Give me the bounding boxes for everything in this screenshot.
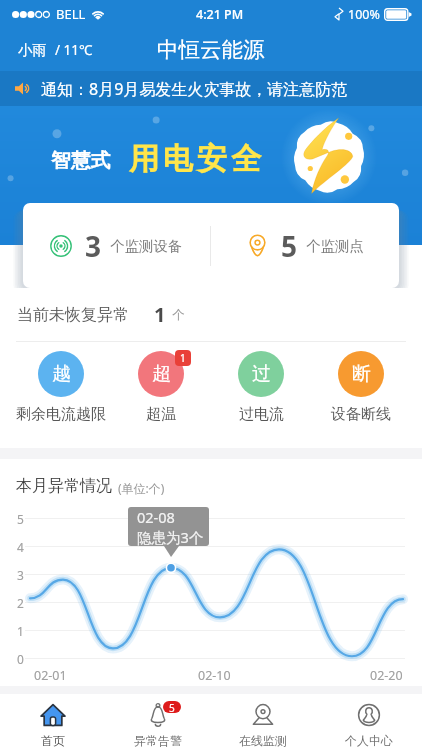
button[interactable]: 在线监测 — [210, 694, 316, 750]
staticText: 1 — [180, 351, 186, 365]
staticText: 过电流 — [239, 405, 284, 424]
other: Announcement — [15, 82, 31, 95]
staticText: 智慧式 — [51, 148, 111, 173]
button[interactable]: 超 — [111, 342, 211, 448]
staticText: 通知：8月9月易发生火灾事故，请注意防范 — [41, 78, 348, 100]
staticText: 3 — [17, 567, 24, 583]
staticText: 4 — [17, 539, 24, 555]
button[interactable]: 5 — [105, 694, 210, 750]
button[interactable]: 3 — [23, 203, 210, 288]
staticText: 越 — [52, 362, 71, 386]
staticText: 02-10 — [198, 667, 231, 684]
staticText: 首页 — [41, 733, 65, 748]
staticText: 当前未恢复异常 — [17, 305, 129, 325]
staticText: BELL — [56, 5, 86, 23]
staticText: 5 — [17, 511, 24, 527]
staticText: 断 — [352, 362, 371, 386]
button[interactable]: Announcement — [0, 71, 422, 106]
staticText: 个人中心 — [345, 733, 393, 748]
button[interactable]: 过 — [211, 342, 311, 448]
button[interactable]: 断 — [311, 342, 411, 448]
button[interactable]: 越 — [11, 342, 111, 448]
button[interactable]: 个人中心 — [316, 694, 422, 750]
staticText: 隐患为3个 — [137, 527, 204, 546]
staticText: 异常告警 — [134, 733, 182, 748]
staticText: 剩余电流越限 — [16, 405, 106, 424]
staticText: 3 — [85, 227, 102, 265]
staticText: 2 — [17, 595, 24, 611]
staticText: (单位:个) — [118, 480, 165, 496]
staticText: 100% — [348, 6, 380, 23]
staticText: 1 — [17, 623, 24, 639]
staticText: 超 — [152, 362, 171, 386]
staticText: 过 — [252, 362, 271, 386]
staticText: 个 — [172, 307, 185, 323]
staticText: 个监测设备 — [110, 237, 183, 255]
staticText: 4:21 PM — [196, 6, 244, 23]
button[interactable]: 5 — [211, 203, 399, 288]
staticText: 02-20 — [370, 667, 403, 684]
staticText: 在线监测 — [239, 733, 287, 748]
staticText: 超温 — [146, 405, 176, 424]
staticText: 小雨 — [18, 41, 47, 59]
staticText: 1 — [154, 301, 166, 328]
staticText: 5 — [169, 701, 175, 713]
staticText: 02-01 — [34, 667, 67, 684]
staticText: 用电安全 — [127, 140, 263, 178]
staticText: 02-08 — [137, 507, 175, 527]
button[interactable]: 小雨 — [0, 41, 93, 59]
staticText: 0 — [17, 651, 24, 667]
staticText: 个监测点 — [306, 237, 364, 255]
staticText: / 11℃ — [55, 41, 93, 59]
staticText: 5 — [281, 227, 298, 265]
staticText: 中恒云能源 — [157, 36, 265, 63]
button[interactable]: 首页 — [0, 694, 105, 750]
staticText: 本月异常情况 — [16, 476, 112, 496]
staticText: 设备断线 — [331, 405, 391, 424]
